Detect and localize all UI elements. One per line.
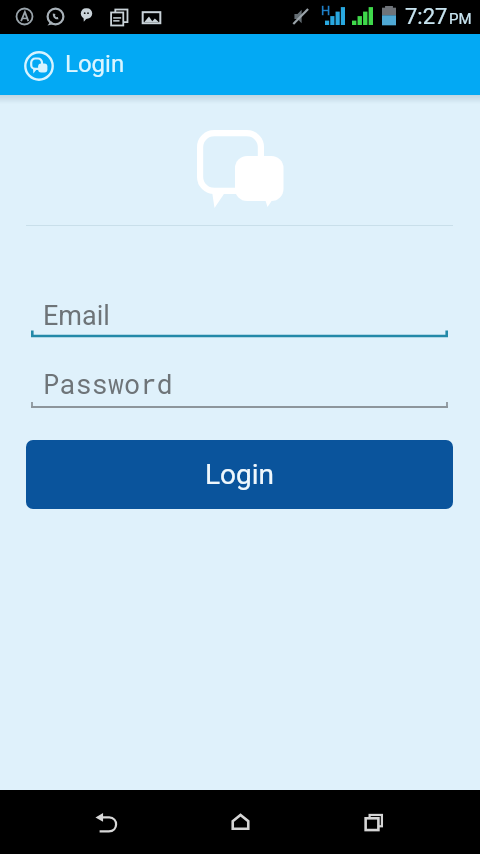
button[interactable]: Recent apps [346,794,402,850]
button[interactable]: Email [26,292,453,344]
staticText: 7:27 [405,4,448,30]
staticText: Password [43,366,173,402]
button[interactable]: App logo [22,49,56,83]
button[interactable]: Password [26,363,453,415]
staticText: Login [205,458,275,491]
staticText: H [321,3,331,18]
button[interactable]: Home [212,794,268,850]
staticText: Email [43,300,110,332]
button[interactable]: Login [26,440,453,509]
staticText: Login [65,50,125,78]
button[interactable]: Back [78,794,134,850]
staticText: PM [449,10,472,28]
